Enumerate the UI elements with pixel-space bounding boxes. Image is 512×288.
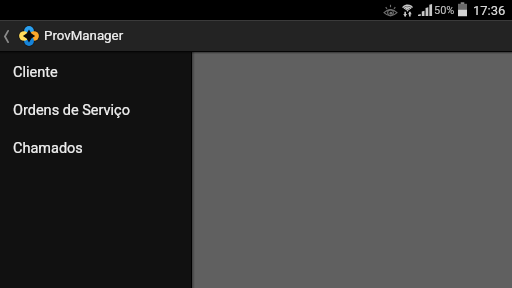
button[interactable]: Chamados: [0, 129, 191, 167]
staticText: ProvManager: [44, 28, 124, 44]
staticText: 17:36: [473, 3, 506, 18]
button[interactable]: Navigate up: [0, 21, 39, 51]
button[interactable]: Cliente: [0, 53, 191, 91]
staticText: Ordens de Serviço: [13, 102, 130, 119]
staticText: 50%: [434, 4, 455, 17]
button[interactable]: Ordens de Serviço: [0, 91, 191, 129]
staticText: Chamados: [13, 140, 83, 157]
staticText: Cliente: [13, 64, 58, 81]
